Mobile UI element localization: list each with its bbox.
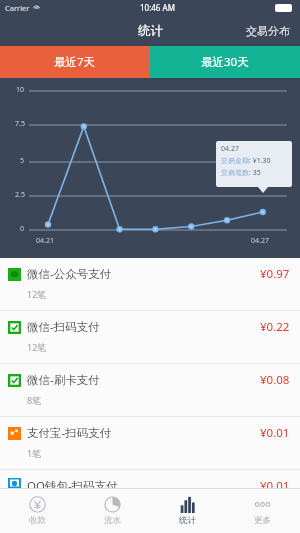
button[interactable]: 更多 <box>225 489 300 533</box>
button[interactable]: 微信-扫码支付 <box>0 311 300 364</box>
staticText: 5 <box>20 156 25 166</box>
staticText: 10 <box>16 85 25 95</box>
staticText: ¥0.08 <box>260 372 290 388</box>
staticText: 交易笔数 <box>221 168 249 177</box>
staticText: 04.21 <box>36 236 54 246</box>
staticText: 8笔 <box>27 394 42 406</box>
staticText: ¥0.01 <box>260 478 290 488</box>
staticText: 04.27 <box>251 236 269 246</box>
staticText: : ¥1.30 <box>249 156 271 166</box>
staticText: Carrier <box>5 3 30 13</box>
staticText: 统计 <box>138 23 163 39</box>
button[interactable]: QQ钱包-扫码支付 <box>0 470 300 488</box>
staticText: 微信-扫码支付 <box>27 319 100 335</box>
button[interactable]: 统计 <box>150 489 225 533</box>
button[interactable]: 最近30天 <box>150 46 300 78</box>
button[interactable]: 微信-刷卡支付 <box>0 364 300 417</box>
staticText: 流水 <box>104 515 121 526</box>
staticText: 0 <box>20 224 25 234</box>
staticText: 12笔 <box>27 341 47 353</box>
staticText: 更多 <box>254 515 271 526</box>
staticText: 支付宝-扫码支付 <box>27 425 112 441</box>
staticText: 10:46 AM <box>140 2 175 13</box>
staticText: 交易分布 <box>246 24 290 38</box>
staticText: 1笔 <box>27 447 42 459</box>
button[interactable]: 交易分布 <box>236 15 300 46</box>
staticText: ¥0.97 <box>260 266 290 282</box>
staticText: 最近30天 <box>201 54 249 70</box>
staticText: 2.5 <box>15 190 25 200</box>
staticText: QQ钱包-扫码支付 <box>27 478 118 488</box>
button[interactable]: 收款 <box>0 489 75 533</box>
staticText: 最近7天 <box>54 54 96 70</box>
staticText: ¥0.01 <box>260 425 290 441</box>
staticText: 12笔 <box>27 288 47 300</box>
button[interactable]: 微信-公众号支付 <box>0 258 300 311</box>
staticText: 微信-公众号支付 <box>27 266 112 282</box>
staticText: 收款 <box>29 515 46 526</box>
staticText: 7.5 <box>15 119 25 129</box>
staticText: 微信-刷卡支付 <box>27 372 100 388</box>
staticText: 统计 <box>179 515 196 526</box>
button[interactable]: 支付宝-扫码支付 <box>0 417 300 470</box>
staticText: ¥0.22 <box>260 319 290 335</box>
staticText: 交易金额 <box>221 156 249 165</box>
button[interactable]: 流水 <box>75 489 150 533</box>
staticText: : 35 <box>249 168 261 178</box>
button[interactable]: 最近7天 <box>0 46 150 78</box>
staticText: 04.27 <box>221 144 239 154</box>
